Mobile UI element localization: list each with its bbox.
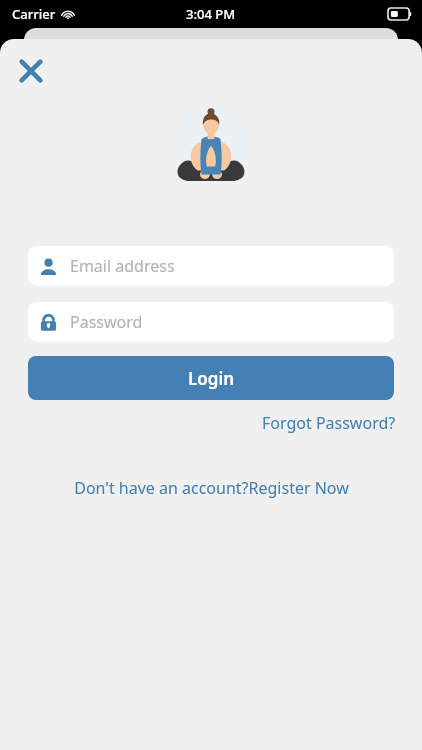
staticText: Email address (70, 255, 175, 277)
button[interactable]: Forgot Password? (260, 409, 398, 437)
staticText: Carrier (12, 5, 56, 23)
staticText: Don't have an account?Register Now (74, 477, 349, 499)
button[interactable]: Close (13, 53, 49, 89)
staticText: 3:04 PM (186, 5, 236, 23)
staticText: Password (70, 311, 143, 333)
staticText: Forgot Password? (262, 412, 396, 434)
button[interactable]: Login (28, 356, 394, 400)
button[interactable]: Email address (28, 246, 394, 286)
staticText: Login (188, 367, 235, 390)
button[interactable]: Password (28, 302, 394, 342)
button[interactable]: Don't have an account?Register Now (70, 474, 353, 502)
